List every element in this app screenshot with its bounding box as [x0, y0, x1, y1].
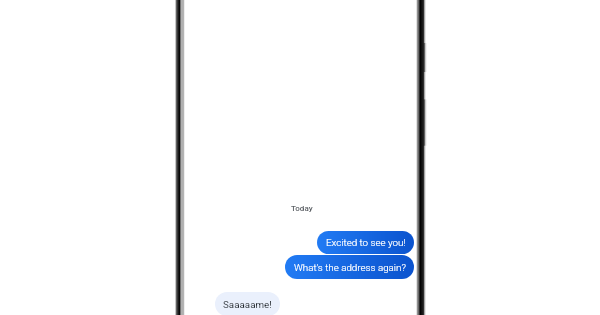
button[interactable]: What's the address again?: [285, 255, 414, 279]
staticText: Excited to see you!: [326, 237, 406, 248]
other: Phone device frame: [0, 0, 600, 315]
staticText: Saaaaame!: [223, 299, 272, 310]
staticText: What's the address again?: [294, 262, 406, 273]
staticText: Today: [291, 204, 313, 213]
button[interactable]: Saaaaame!: [215, 292, 280, 315]
button[interactable]: Excited to see you!: [317, 231, 414, 254]
